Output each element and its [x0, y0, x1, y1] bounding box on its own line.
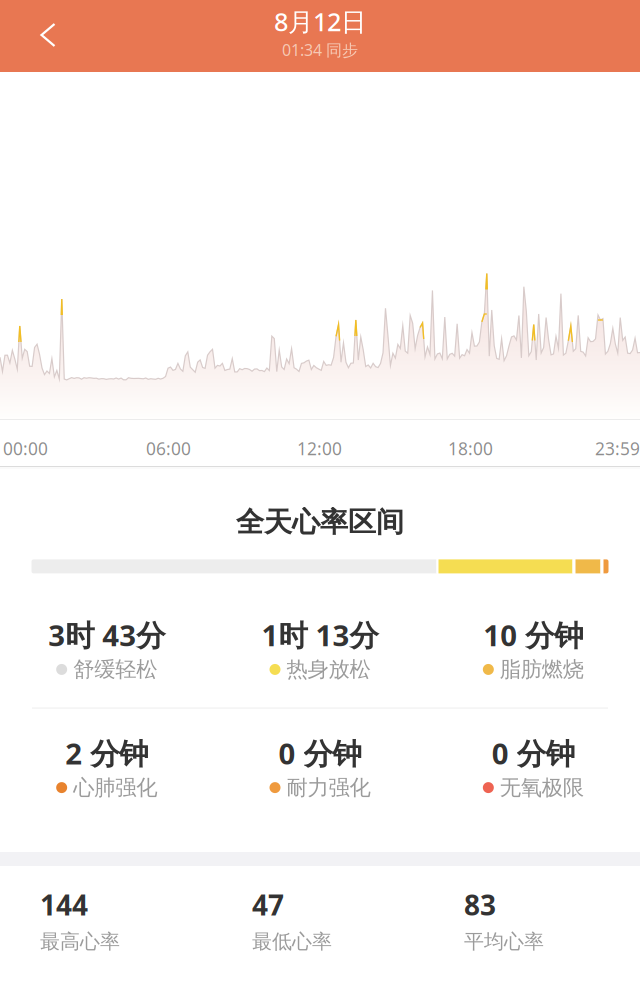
staticText: 无氧极限 [500, 774, 584, 801]
staticText: 舒缓轻松 [73, 656, 157, 682]
staticText: 06:00 [146, 437, 191, 460]
staticText: 18:00 [448, 437, 493, 460]
staticText: 144 [40, 886, 88, 923]
staticText: 全天心率区间 [236, 505, 404, 539]
staticText: 热身放松 [286, 656, 370, 682]
staticText: 1时 13分 [261, 615, 378, 654]
staticText: 心肺强化 [73, 774, 157, 801]
staticText: 12:00 [297, 437, 342, 460]
staticText: 8月12日 [274, 5, 366, 38]
staticText: 最低心率 [252, 929, 332, 954]
staticText: 47 [252, 886, 284, 923]
button[interactable]: Back [0, 1, 96, 71]
staticText: 0 分钟 [492, 733, 575, 772]
staticText: 耐力强化 [286, 774, 370, 801]
staticText: 2 分钟 [65, 733, 148, 772]
staticText: 10 分钟 [483, 615, 583, 654]
staticText: 01:34 同步 [282, 39, 358, 60]
staticText: 平均心率 [464, 929, 544, 954]
staticText: 83 [464, 886, 496, 923]
staticText: 3时 43分 [48, 615, 165, 654]
staticText: 0 分钟 [278, 733, 361, 772]
staticText: 00:00 [3, 437, 48, 460]
staticText: 23:59 [595, 437, 640, 460]
staticText: 最高心率 [40, 929, 120, 954]
staticText: 脂肪燃烧 [500, 656, 584, 682]
